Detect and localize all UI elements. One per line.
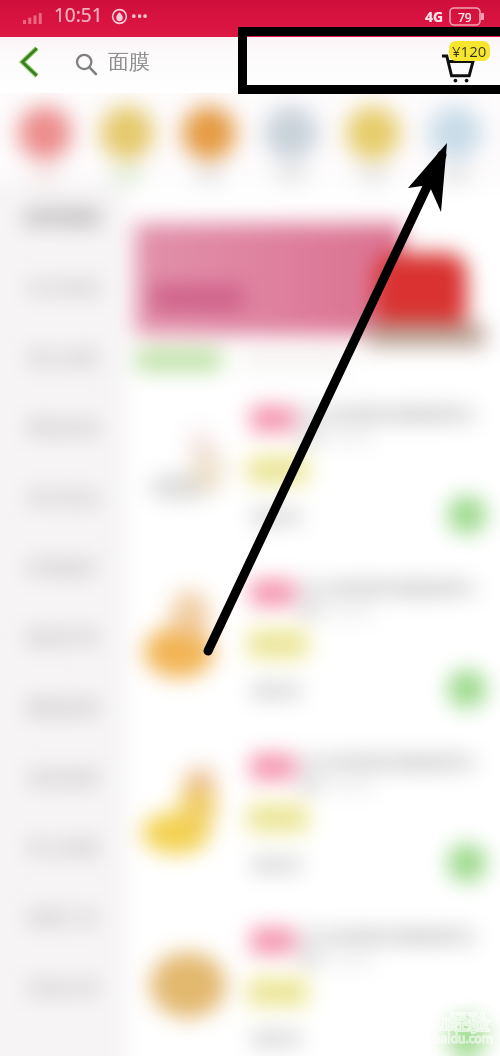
button[interactable]: 补水保湿 (0, 253, 126, 323)
staticText: 满99减20 (252, 810, 304, 826)
staticText: 79 (458, 9, 472, 25)
staticText: 面膜 (441, 167, 469, 185)
staticText: 促销 (260, 585, 286, 601)
staticText: 满99减20 (252, 984, 304, 1000)
staticText: 10:51 (54, 2, 103, 28)
button[interactable]: 清洁控油 (0, 463, 126, 533)
button[interactable]: 促销 (126, 746, 500, 920)
staticText: 促销 (260, 411, 286, 427)
button[interactable]: 睡眠面膜 (0, 673, 126, 743)
staticText: 面膜 (113, 167, 141, 185)
staticText: 补水滋润紧致 (302, 430, 374, 445)
staticText: 满99减20 (252, 636, 304, 652)
button[interactable]: Add to cart (448, 1018, 486, 1056)
staticText: 促销 (260, 933, 286, 949)
staticText: 面膜 (195, 167, 223, 185)
button[interactable]: Category (18, 106, 72, 160)
staticText: 补水保湿蚕丝面膜贴男女通 (300, 927, 490, 969)
button[interactable]: Back (8, 41, 50, 83)
button[interactable]: Category (428, 106, 482, 160)
staticText: 补水保湿蚕丝面膜贴男女通 (300, 579, 490, 621)
staticText: 补水保湿蚕丝面膜贴男女通 (300, 405, 490, 447)
button[interactable]: 男士面膜 (0, 813, 126, 883)
staticText: 满99减20 (252, 462, 304, 478)
staticText: Baidu经验 (388, 1008, 490, 1037)
button[interactable]: Add to cart (448, 496, 486, 534)
staticText: 面膜 (359, 167, 387, 185)
button[interactable]: Category (264, 106, 318, 160)
staticText: ¥29.9 (252, 504, 301, 530)
staticText: 推荐面膜 (25, 206, 101, 230)
button[interactable]: 促销 (126, 572, 500, 746)
button[interactable]: 美白淡斑 (0, 323, 126, 393)
button[interactable]: 促销 (126, 398, 500, 572)
staticText: 补水保湿蚕丝面膜贴男女通 (300, 753, 490, 795)
button[interactable]: Add to cart (448, 844, 486, 882)
staticText: jingyan.baidu.com (389, 1030, 493, 1046)
button[interactable]: 紧致抗皱 (0, 393, 126, 463)
button[interactable]: Category (100, 106, 154, 160)
button[interactable] (135, 223, 485, 335)
button[interactable]: 眼部护理 (0, 603, 126, 673)
staticText: 促销 (260, 759, 286, 775)
staticText: + (461, 674, 474, 704)
staticText: 舒缓修护 (27, 557, 99, 580)
staticText: ¥29.9 (252, 852, 301, 878)
staticText: 面膜 (31, 167, 59, 185)
button[interactable]: 涂抹面膜 (0, 743, 126, 813)
button[interactable]: 舒缓修护 (0, 533, 126, 603)
staticText: 面膜 (108, 49, 150, 75)
staticText: + (461, 848, 474, 878)
staticText: 4G (425, 7, 444, 26)
button[interactable]: Add to cart (448, 670, 486, 708)
staticText: 面膜 (277, 167, 305, 185)
button[interactable]: 促销 (126, 920, 500, 1056)
staticText: + (461, 500, 474, 530)
staticText: 补水滋润紧致 (302, 778, 374, 793)
staticText: 补水滋润紧致 (302, 604, 374, 619)
staticText: + (461, 1022, 474, 1052)
staticText: ¥29.9 (252, 1026, 301, 1052)
button[interactable]: Category (182, 106, 236, 160)
button[interactable]: 面膜工具 (0, 883, 126, 953)
staticText: ¥120 (452, 41, 487, 61)
staticText: ¥29.9 (252, 678, 301, 704)
button[interactable]: 面膜 (64, 37, 244, 93)
button[interactable]: Category (346, 106, 400, 160)
staticText: 补水滋润紧致 (302, 952, 374, 967)
button[interactable]: 推荐面膜 (0, 183, 126, 253)
button[interactable]: 其他分类 (0, 953, 126, 1023)
staticText: ••• (131, 6, 148, 26)
